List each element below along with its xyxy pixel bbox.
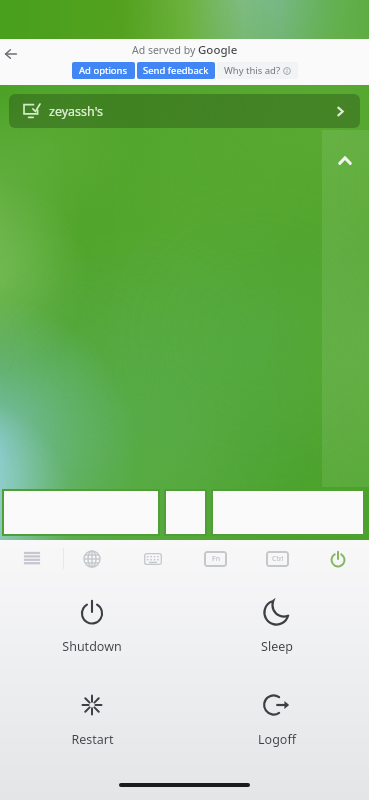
button[interactable]: Power — [323, 549, 353, 569]
button[interactable]: Ad options — [72, 62, 135, 79]
button[interactable]: Ctrl key — [265, 551, 289, 567]
button[interactable]: Sleep — [232, 598, 322, 655]
staticText: Ctrl — [272, 554, 284, 564]
staticText: Ad served by — [132, 43, 198, 57]
staticText: Logoff — [258, 731, 296, 748]
staticText: Shutdown — [62, 638, 122, 655]
button[interactable]: Keyboard — [138, 549, 168, 569]
staticText: Sleep — [261, 638, 293, 655]
staticText: Why this ad? — [224, 64, 283, 77]
staticText: Ad options — [79, 64, 128, 77]
button[interactable]: Restart — [47, 691, 137, 748]
button[interactable]: Menu — [17, 548, 47, 568]
staticText: Google — [198, 42, 238, 58]
staticText: zeyassh's — [49, 103, 104, 120]
button[interactable]: Why this ad? — [217, 62, 298, 79]
staticText: Restart — [71, 731, 114, 748]
button[interactable]: zeyassh's — [9, 94, 360, 128]
button[interactable]: Send feedback — [137, 62, 215, 79]
button[interactable]: Logoff — [232, 691, 322, 748]
button[interactable]: Back — [0, 39, 25, 68]
staticText: Fn — [212, 554, 220, 564]
button[interactable]: Fn key — [203, 551, 227, 567]
button[interactable]: Shutdown — [47, 598, 137, 655]
button[interactable]: Scroll up — [333, 149, 356, 172]
staticText: Send feedback — [143, 64, 209, 77]
button[interactable]: Globe — [77, 549, 107, 569]
